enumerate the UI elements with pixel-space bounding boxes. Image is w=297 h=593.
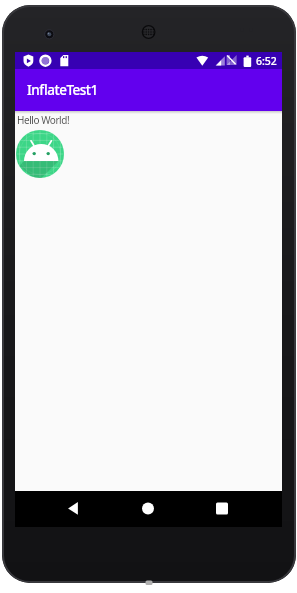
- button[interactable]: [204, 491, 240, 527]
- staticText: 6:52: [256, 54, 277, 68]
- staticText: InflateTest1: [27, 81, 98, 99]
- button[interactable]: [130, 491, 166, 527]
- staticText: Hello World!: [17, 113, 70, 127]
- button[interactable]: InflateTest1: [15, 69, 282, 111]
- button[interactable]: [55, 491, 91, 527]
